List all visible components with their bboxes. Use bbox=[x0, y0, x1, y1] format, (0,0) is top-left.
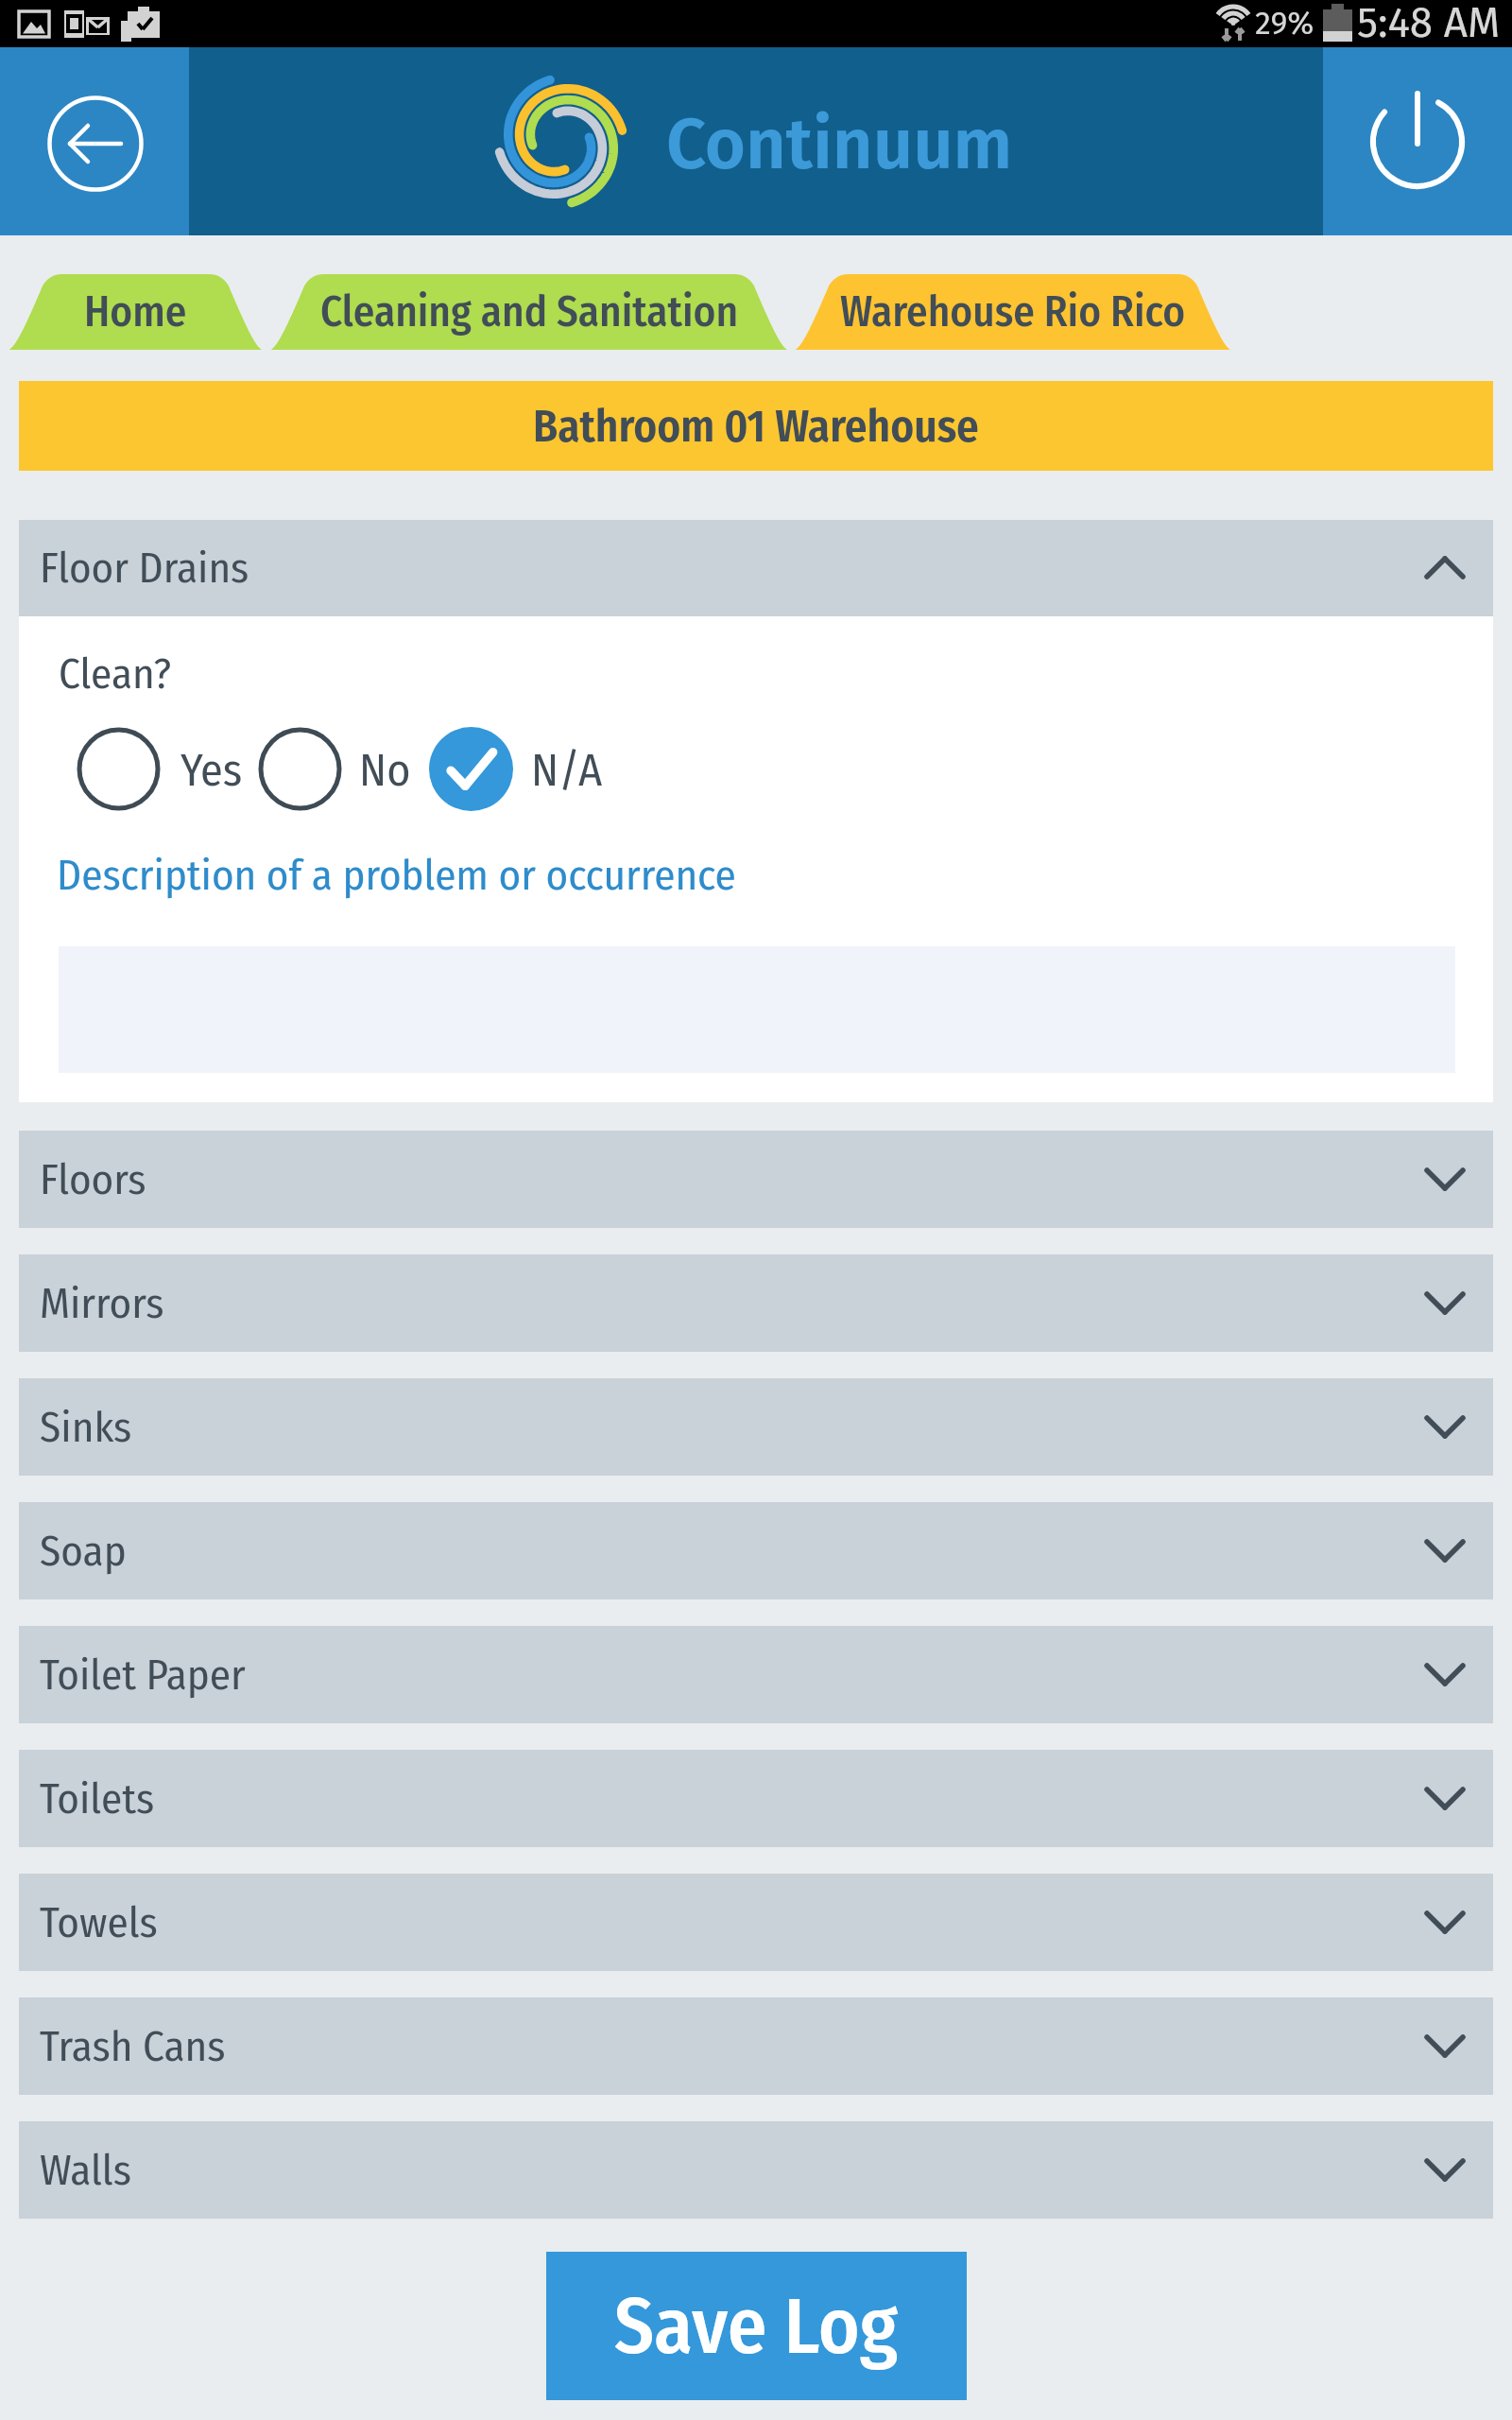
button[interactable]: N/A bbox=[429, 727, 616, 812]
button[interactable]: Mirrors bbox=[19, 1254, 1493, 1352]
button[interactable]: Yes bbox=[77, 727, 266, 812]
staticText: 5:48 AM bbox=[1357, 0, 1501, 45]
button[interactable]: Toilets bbox=[19, 1750, 1493, 1847]
staticText: Toilet Paper bbox=[40, 1650, 246, 1701]
staticText: Cleaning and Sanitation bbox=[320, 286, 739, 337]
button[interactable]: Bathroom 01 Warehouse bbox=[19, 381, 1493, 471]
button[interactable]: Soap bbox=[19, 1502, 1493, 1599]
button[interactable]: Toilet Paper bbox=[19, 1626, 1493, 1723]
button[interactable]: Trash Cans bbox=[19, 1997, 1493, 2095]
button[interactable]: Warehouse Rio Rico bbox=[796, 274, 1230, 350]
staticText: N/A bbox=[531, 743, 603, 798]
button[interactable]: Cleaning and Sanitation bbox=[271, 274, 787, 350]
staticText: Clean? bbox=[59, 648, 172, 700]
button[interactable]: Sinks bbox=[19, 1378, 1493, 1476]
staticText: Continuum bbox=[666, 103, 1013, 187]
staticText: Sinks bbox=[40, 1402, 132, 1453]
staticText: Trash Cans bbox=[40, 2021, 226, 2072]
staticText: Soap bbox=[40, 1526, 127, 1577]
staticText: Home bbox=[84, 286, 187, 337]
staticText: Mirrors bbox=[40, 1278, 164, 1329]
staticText: Description of a problem or occurrence bbox=[57, 850, 736, 901]
staticText: Yes bbox=[180, 743, 243, 798]
staticText: Toilets bbox=[40, 1773, 155, 1824]
button[interactable]: Power off bbox=[1370, 95, 1465, 189]
button[interactable]: No bbox=[258, 727, 444, 812]
staticText: 29% bbox=[1255, 4, 1314, 43]
button[interactable]: Back bbox=[47, 95, 144, 192]
button[interactable]: Walls bbox=[19, 2121, 1493, 2219]
staticText: Walls bbox=[40, 2145, 131, 2196]
button[interactable]: Floors bbox=[19, 1131, 1493, 1228]
staticText: Bathroom 01 Warehouse bbox=[533, 400, 979, 453]
staticText: Towels bbox=[40, 1897, 158, 1948]
button[interactable]: Floor Drains bbox=[19, 520, 1493, 616]
button[interactable]: Save Log bbox=[546, 2252, 967, 2400]
staticText: Warehouse Rio Rico bbox=[840, 286, 1186, 337]
staticText: Floor Drains bbox=[40, 543, 249, 594]
staticText: Floors bbox=[40, 1154, 146, 1205]
button[interactable]: Towels bbox=[19, 1874, 1493, 1971]
button[interactable]: Home bbox=[9, 274, 262, 350]
staticText: Save Log bbox=[614, 2279, 899, 2374]
staticText: No bbox=[359, 743, 411, 798]
